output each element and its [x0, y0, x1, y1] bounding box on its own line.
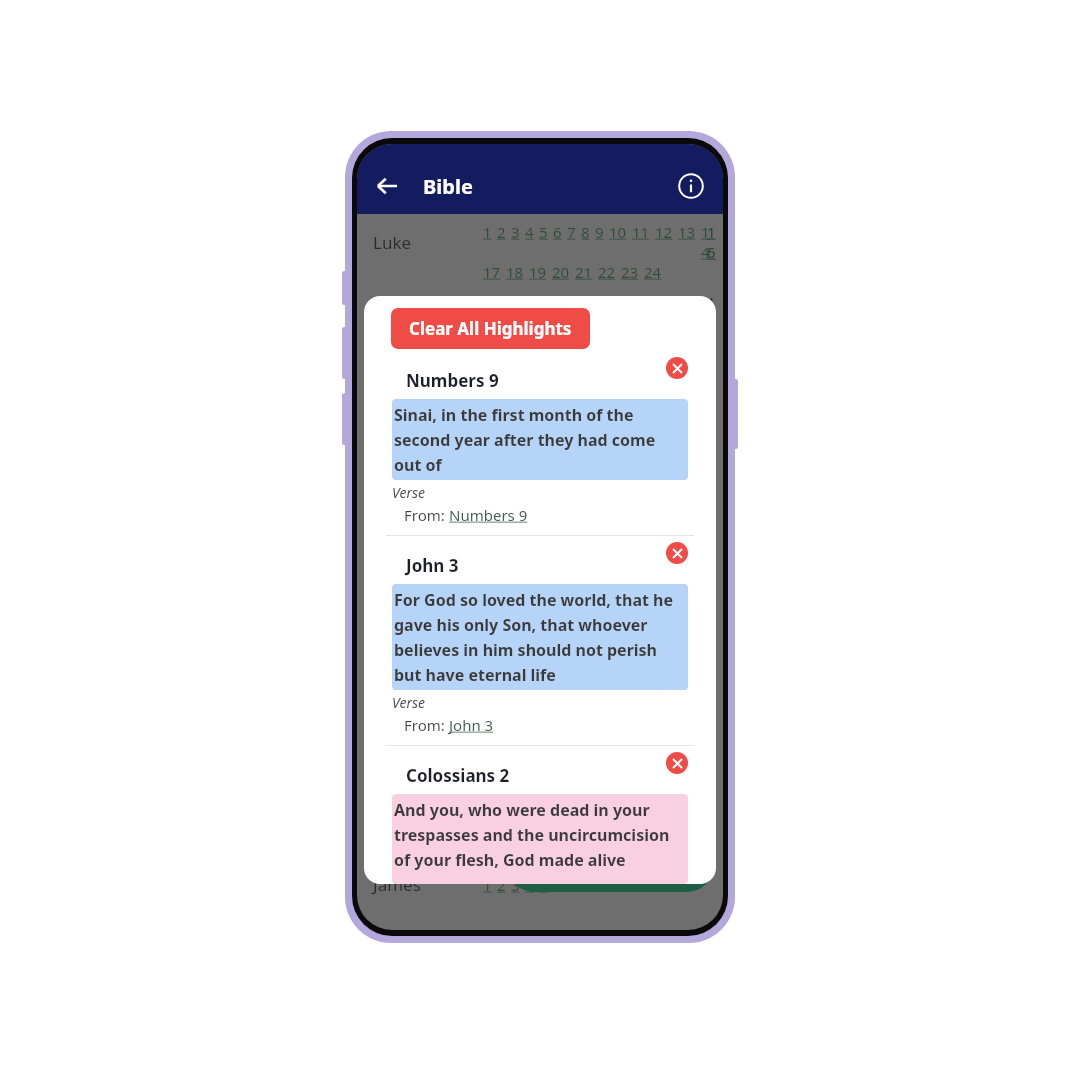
staticText: 13	[678, 222, 696, 242]
staticText: 11	[632, 292, 650, 312]
staticText: 2	[497, 666, 506, 686]
staticText: 1	[483, 875, 492, 895]
staticText: Th	[373, 664, 483, 687]
staticText: Sinai, in the first month of the second …	[394, 404, 686, 475]
staticText: 3	[511, 875, 520, 895]
staticText: And you, who were dead in your trespasse…	[394, 799, 686, 879]
staticText: 1	[483, 430, 492, 450]
button[interactable]: Remove highlight	[666, 752, 688, 774]
staticText: 12	[655, 838, 673, 858]
staticText: 7	[567, 292, 576, 312]
staticText: 4	[525, 430, 534, 450]
staticText: Bible	[423, 173, 473, 200]
staticText: 3	[511, 222, 520, 242]
staticText: 9	[595, 430, 604, 450]
staticText: 3	[511, 430, 520, 450]
staticText: 5	[539, 292, 548, 312]
staticText: 2	[497, 222, 506, 242]
staticText: Numbers 9	[449, 505, 528, 525]
staticText: 21	[575, 332, 593, 352]
staticText: 6	[553, 222, 562, 242]
staticText: 23	[621, 262, 639, 282]
staticText: 20	[552, 262, 570, 282]
staticText: James	[373, 873, 483, 896]
staticText: 4	[525, 666, 534, 686]
staticText: Verse	[392, 483, 426, 502]
staticText: 3	[511, 838, 520, 858]
button[interactable]: For God so loved the world, that he gave…	[392, 584, 688, 690]
button[interactable]: Info	[669, 164, 713, 208]
staticText: 17	[483, 332, 501, 352]
staticText: 7	[567, 838, 576, 858]
staticText: 5	[539, 222, 548, 242]
staticText: From:	[404, 505, 449, 525]
staticText: John 3	[406, 554, 459, 577]
staticText: 2	[497, 430, 506, 450]
staticText: From:	[404, 715, 449, 735]
staticText: 13	[678, 362, 696, 382]
staticText: 17	[483, 262, 501, 282]
staticText: John 3	[449, 715, 494, 735]
staticText: 2	[497, 838, 506, 858]
staticText: 9	[595, 292, 604, 312]
staticText: 7	[567, 222, 576, 242]
button[interactable]: Sinai, in the first month of the second …	[392, 399, 688, 480]
staticText: 13	[678, 292, 696, 312]
button[interactable]: Back	[365, 164, 409, 208]
staticText: 5	[539, 838, 548, 858]
staticText: 13	[678, 838, 696, 858]
button[interactable]: Remove highlight	[666, 542, 688, 564]
button[interactable]: From:	[404, 715, 494, 735]
staticText: 22	[598, 262, 616, 282]
staticText: Clear All Highlights	[409, 317, 572, 340]
staticText: 4	[525, 222, 534, 242]
staticText: 3	[511, 292, 520, 312]
staticText: 13	[678, 554, 696, 574]
staticText: Hebrews	[373, 836, 483, 859]
staticText: 4	[525, 838, 534, 858]
button[interactable]: Clear All Highlights	[391, 308, 590, 349]
staticText: 1	[483, 222, 492, 242]
staticText: 18	[506, 332, 524, 352]
staticText: 20	[552, 332, 570, 352]
staticText: 3	[511, 666, 520, 686]
staticText: 12	[655, 222, 673, 242]
staticText: 8	[581, 430, 590, 450]
staticText: 11	[632, 430, 650, 450]
button[interactable]: And you, who were dead in your trespasse…	[392, 794, 688, 884]
staticText: 19	[529, 262, 547, 282]
staticText: 18	[506, 262, 524, 282]
button[interactable]: Remove highlight	[666, 357, 688, 379]
button[interactable]: View Highlights	[508, 840, 713, 892]
staticText: 11	[632, 838, 650, 858]
button[interactable]: From:	[404, 505, 528, 525]
staticText: Co	[373, 499, 483, 522]
staticText: 10	[609, 222, 627, 242]
staticText: 11	[632, 222, 650, 242]
staticText: 2	[497, 362, 506, 382]
